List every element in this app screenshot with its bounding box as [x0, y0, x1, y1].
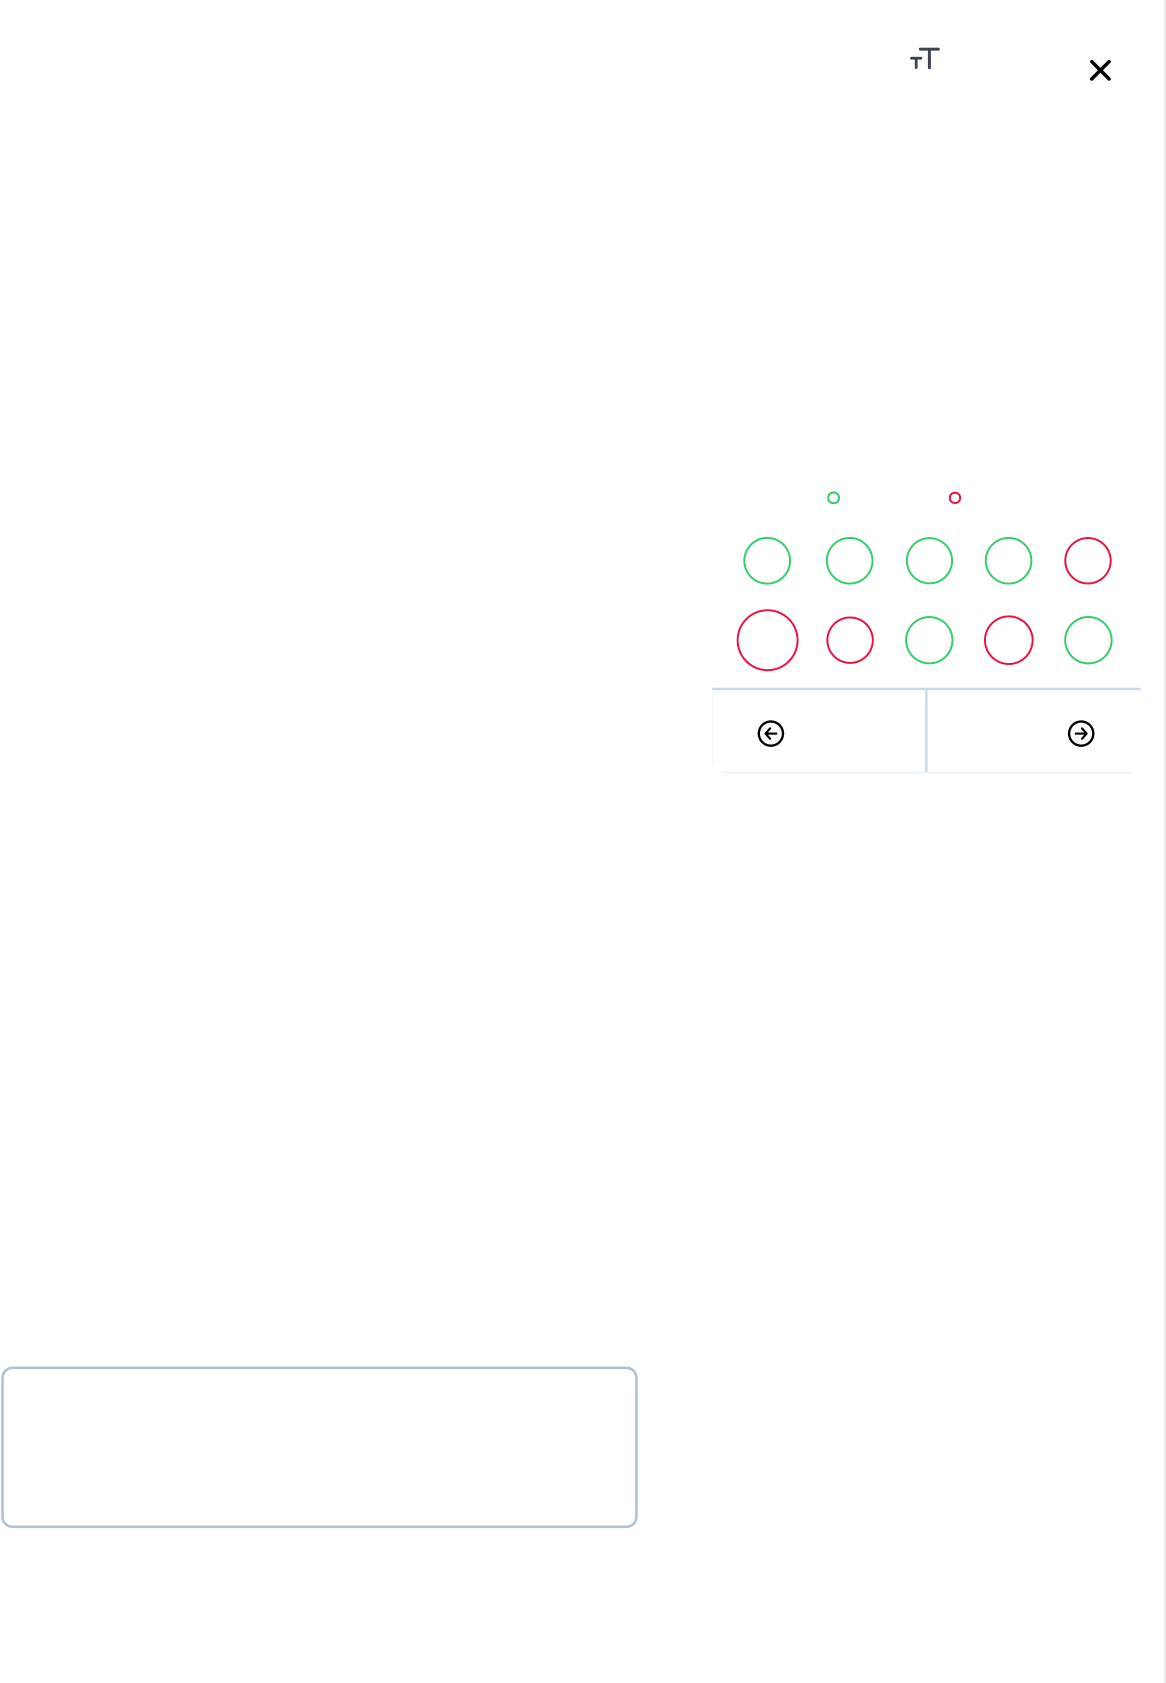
button[interactable]: Known word [819, 530, 880, 592]
button[interactable]: New word [730, 602, 805, 678]
button[interactable]: New word [819, 609, 881, 671]
button[interactable]: Known word [898, 609, 960, 671]
button[interactable]: Known word [736, 530, 798, 592]
button[interactable]: Known word [1057, 609, 1120, 671]
button[interactable]: Known word [899, 530, 960, 591]
button[interactable]: Next sentence [926, 692, 1141, 775]
button[interactable]: Notes [2, 1368, 636, 1527]
button[interactable]: New word [1057, 530, 1119, 591]
button[interactable]: Previous sentence [712, 692, 926, 775]
button[interactable]: Close [1056, 26, 1144, 114]
button[interactable]: Known word [978, 530, 1039, 592]
button[interactable]: Text size [881, 14, 969, 102]
button[interactable]: New word [977, 608, 1041, 672]
